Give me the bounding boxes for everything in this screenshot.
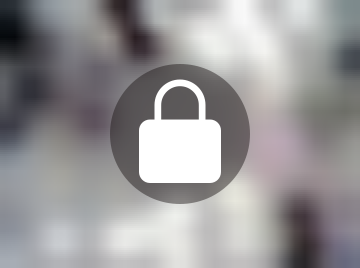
- button[interactable]: Locked: [0, 0, 360, 268]
